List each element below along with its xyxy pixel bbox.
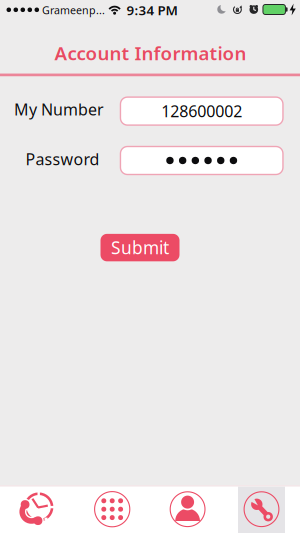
staticText: My Number — [14, 99, 104, 120]
button[interactable]: Password — [120, 146, 283, 174]
staticText: Account Information — [54, 41, 246, 65]
staticText: 128600002 — [161, 100, 242, 122]
button[interactable]: Contacts — [150, 487, 225, 533]
staticText: Submit — [111, 236, 169, 259]
button[interactable]: My Number — [120, 97, 283, 125]
staticText: Password — [25, 148, 99, 170]
button[interactable]: Keypad — [75, 487, 150, 533]
staticText: Grameenp... — [42, 3, 105, 17]
button[interactable]: Call History — [0, 487, 75, 533]
staticText: 9:34 PM — [126, 1, 177, 19]
button[interactable]: Settings — [225, 487, 300, 533]
button[interactable]: Submit — [100, 234, 179, 261]
